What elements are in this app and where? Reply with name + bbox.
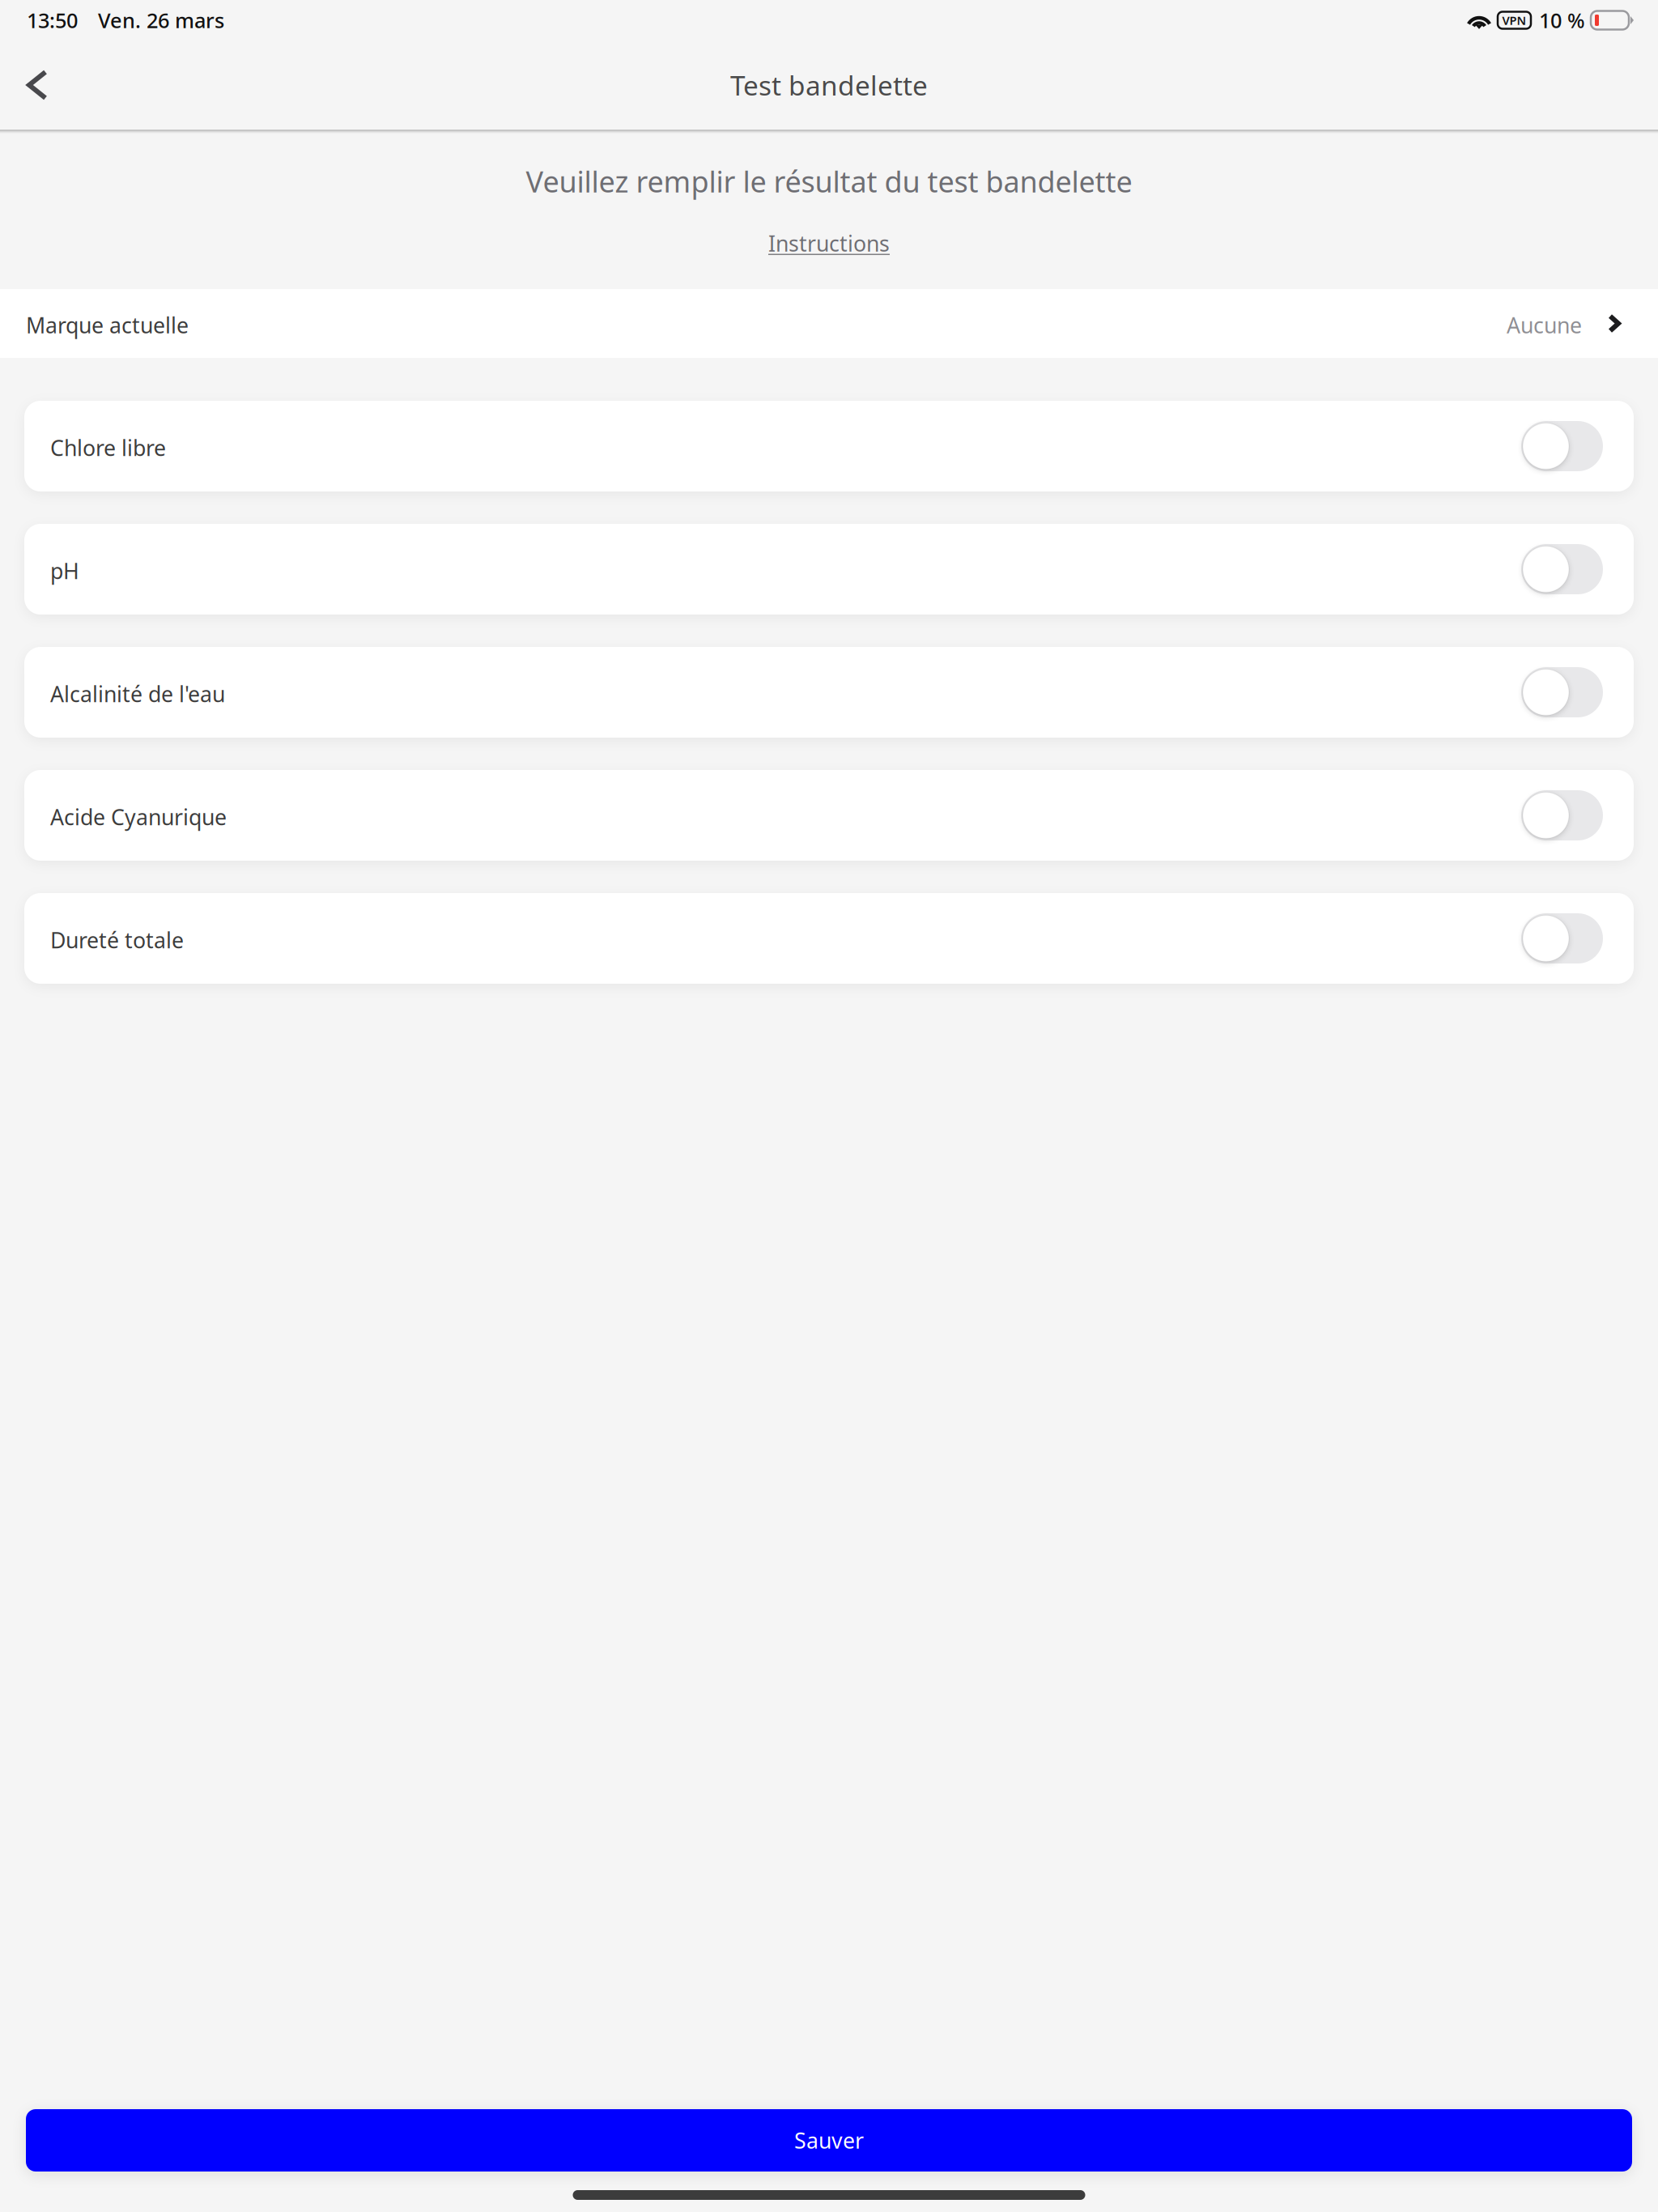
staticText: Chlore libre [50,433,166,462]
staticText: Aucune [1507,311,1582,339]
staticText: Dureté totale [50,926,184,954]
staticText: pH [50,556,79,585]
staticText: Marque actuelle [26,311,189,339]
staticText: 13:50 [27,7,78,34]
staticText: Test bandelette [730,67,928,103]
button[interactable]: Sauver [26,2109,1632,2172]
staticText: Instructions [768,229,890,258]
staticText: Veuillez remplir le résultat du test ban… [526,162,1132,201]
button[interactable]: Chlore libre [24,401,1634,491]
staticText: Ven. 26 mars [98,7,224,34]
staticText: Alcalinité de l'eau [50,680,225,708]
button[interactable]: Instructions [754,219,904,267]
button[interactable]: Marque actuelle [0,289,1658,358]
staticText: 10 % [1539,7,1585,34]
button[interactable]: Acide Cyanurique [24,770,1634,861]
button[interactable]: Back [27,53,85,117]
staticText: VPN [1502,12,1526,28]
button[interactable]: Dureté totale [24,893,1634,984]
staticText: Sauver [794,2126,864,2155]
staticText: Acide Cyanurique [50,803,227,831]
button[interactable]: pH [24,524,1634,615]
button[interactable]: Alcalinité de l'eau [24,647,1634,738]
